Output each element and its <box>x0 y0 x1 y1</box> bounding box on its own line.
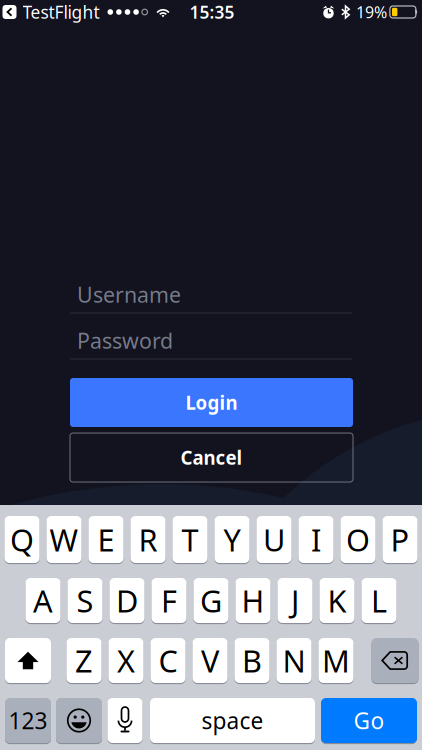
staticText: TestFlight <box>22 0 99 23</box>
staticText: X <box>117 640 135 681</box>
staticText: 19% <box>356 1 387 23</box>
button[interactable]: R <box>130 515 165 564</box>
button[interactable]: Cancel <box>70 433 353 482</box>
staticText: M <box>322 640 350 681</box>
staticText: N <box>282 640 305 681</box>
button[interactable]: Go <box>321 697 417 744</box>
button[interactable]: K <box>319 577 354 624</box>
staticText: Go <box>353 705 384 735</box>
button[interactable]: V <box>192 637 227 684</box>
staticText: T <box>181 519 198 560</box>
button[interactable]: D <box>109 577 144 624</box>
staticText: Q <box>10 519 34 560</box>
staticText: H <box>241 580 264 621</box>
staticText: V <box>201 640 219 681</box>
button[interactable]: Y <box>214 515 249 564</box>
staticText: F <box>161 580 177 621</box>
button[interactable]: Z <box>66 637 101 684</box>
button[interactable]: C <box>150 637 185 684</box>
staticText: B <box>242 640 262 681</box>
staticText: 123 <box>8 705 47 735</box>
staticText: E <box>97 519 114 560</box>
staticText: Password <box>77 326 173 355</box>
staticText: D <box>116 580 138 621</box>
button[interactable]: Emoji <box>56 697 102 744</box>
button[interactable]: S <box>67 577 102 624</box>
button[interactable]: 123 <box>5 697 51 744</box>
staticText: W <box>49 519 78 560</box>
button[interactable]: H <box>235 577 270 624</box>
staticText: space <box>201 705 263 735</box>
staticText: I <box>311 519 321 560</box>
button[interactable]: L <box>361 577 396 624</box>
button[interactable]: M <box>318 637 353 684</box>
button[interactable]: B <box>234 637 269 684</box>
button[interactable]: E <box>88 515 123 564</box>
button[interactable]: N <box>276 637 311 684</box>
button[interactable]: F <box>151 577 186 624</box>
staticText: K <box>327 580 346 621</box>
button[interactable]: W <box>46 515 81 564</box>
button[interactable]: I <box>298 515 333 564</box>
staticText: U <box>263 519 285 560</box>
button[interactable]: P <box>382 515 417 564</box>
button[interactable]: A <box>25 577 60 624</box>
staticText: Login <box>185 390 237 415</box>
button[interactable]: X <box>108 637 143 684</box>
button[interactable]: Delete <box>371 637 418 684</box>
button[interactable]: space <box>150 697 315 744</box>
button[interactable]: G <box>193 577 228 624</box>
staticText: G <box>200 580 222 621</box>
button[interactable]: J <box>277 577 312 624</box>
button[interactable]: Shift <box>5 637 51 684</box>
button[interactable]: U <box>256 515 291 564</box>
staticText: J <box>291 580 299 621</box>
button[interactable]: O <box>340 515 375 564</box>
staticText: P <box>390 519 409 560</box>
staticText: 15:35 <box>189 0 234 23</box>
staticText: Y <box>223 519 240 560</box>
staticText: S <box>76 580 93 621</box>
button[interactable]: Dictation <box>107 697 142 744</box>
staticText: O <box>346 519 370 560</box>
staticText: C <box>158 640 177 681</box>
button[interactable]: T <box>172 515 207 564</box>
button[interactable]: Login <box>70 378 353 427</box>
button[interactable]: Q <box>4 515 39 564</box>
staticText: R <box>138 519 157 560</box>
staticText: A <box>33 580 53 621</box>
staticText: Cancel <box>180 445 242 470</box>
staticText: L <box>371 580 387 621</box>
staticText: Z <box>75 640 93 681</box>
staticText: Username <box>77 280 181 309</box>
